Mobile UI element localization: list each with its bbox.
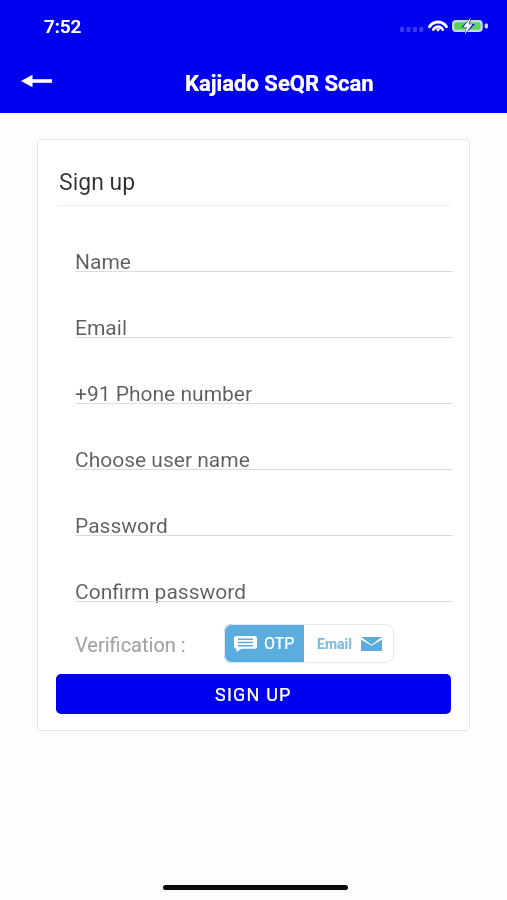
button[interactable]: Email: [304, 624, 394, 663]
staticText: Sign up: [59, 169, 136, 196]
staticText: Password: [75, 514, 168, 539]
button[interactable]: Confirm password: [75, 572, 453, 624]
button[interactable]: Choose user name: [75, 440, 453, 506]
staticText: Confirm password: [75, 580, 247, 605]
button[interactable]: Back: [14, 63, 59, 99]
button[interactable]: SIGN UP: [56, 674, 451, 714]
button[interactable]: Email: [75, 308, 453, 374]
button[interactable]: +91 Phone number: [75, 374, 453, 440]
button[interactable]: OTP: [224, 624, 304, 663]
button[interactable]: Password: [75, 506, 453, 572]
staticText: +91 Phone number: [75, 382, 253, 407]
staticText: Kajiado SeQR Scan: [185, 71, 374, 97]
staticText: OTP: [264, 634, 295, 653]
staticText: Email: [317, 636, 352, 652]
staticText: Name: [75, 250, 131, 275]
staticText: Verification :: [75, 633, 186, 656]
staticText: 7:52: [44, 15, 82, 37]
button[interactable]: Name: [75, 242, 453, 308]
staticText: Email: [75, 316, 127, 341]
staticText: Choose user name: [75, 448, 250, 473]
staticText: SIGN UP: [215, 684, 292, 705]
